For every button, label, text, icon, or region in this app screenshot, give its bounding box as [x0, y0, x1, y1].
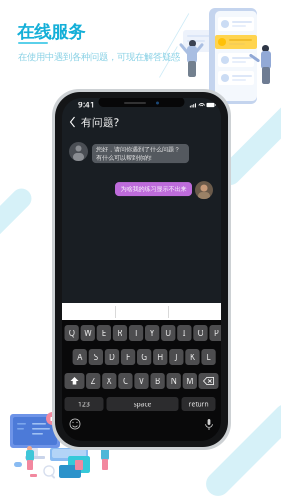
button[interactable]: J: [169, 349, 183, 365]
staticText: X: [107, 376, 112, 386]
button[interactable]: Q: [64, 325, 79, 341]
button[interactable]: A: [73, 349, 87, 365]
staticText: Q: [69, 328, 75, 338]
staticText: V: [139, 376, 144, 386]
button[interactable]: Emoji: [69, 418, 81, 430]
button[interactable]: L: [201, 349, 216, 365]
staticText: P: [214, 328, 219, 338]
button[interactable]: H: [153, 349, 167, 365]
staticText: 在使用中遇到各种问题，可现在解答疑惑: [18, 51, 180, 63]
staticText: K: [190, 352, 195, 362]
staticText: U: [165, 328, 171, 338]
button[interactable]: W: [81, 325, 95, 341]
staticText: 在线服务: [17, 21, 85, 43]
staticText: J: [175, 352, 177, 362]
staticText: R: [117, 328, 122, 338]
button[interactable]: N: [167, 373, 181, 389]
button[interactable]: space: [106, 397, 178, 411]
staticText: O: [197, 328, 203, 338]
button[interactable]: M: [183, 373, 197, 389]
button[interactable]: 123: [64, 397, 103, 411]
button[interactable]: S: [89, 349, 103, 365]
staticText: E: [102, 328, 106, 338]
staticText: I: [183, 328, 186, 338]
button[interactable]: C: [118, 373, 133, 389]
staticText: 9:41: [78, 99, 95, 110]
staticText: A: [77, 352, 82, 362]
button[interactable]: U: [161, 325, 175, 341]
staticText: M: [186, 376, 193, 386]
staticText: F: [126, 352, 130, 362]
staticText: N: [171, 376, 177, 386]
staticText: W: [84, 328, 91, 338]
button[interactable]: Delete: [198, 373, 218, 389]
button[interactable]: Z: [86, 373, 100, 389]
button[interactable]: G: [137, 349, 151, 365]
button[interactable]: Dictation: [204, 417, 214, 430]
button[interactable]: I: [177, 325, 191, 341]
button[interactable]: Y: [145, 325, 159, 341]
staticText: D: [109, 352, 115, 362]
button[interactable]: O: [193, 325, 208, 341]
staticText: Y: [150, 328, 155, 338]
button[interactable]: T: [129, 325, 143, 341]
staticText: T: [134, 328, 138, 338]
staticText: return: [188, 400, 208, 408]
staticText: 您好，请问你遇到了什么问题？有什么可以帮到你的!: [96, 145, 180, 162]
button[interactable]: B: [150, 373, 165, 389]
button[interactable]: K: [185, 349, 200, 365]
staticText: 为啥我的练习显示不出来: [120, 185, 186, 193]
button[interactable]: R: [113, 325, 127, 341]
staticText: Z: [91, 376, 96, 386]
button[interactable]: V: [134, 373, 149, 389]
staticText: S: [94, 352, 98, 362]
button[interactable]: Shift: [64, 373, 84, 389]
button[interactable]: P: [209, 325, 224, 341]
staticText: 123: [78, 400, 90, 408]
button[interactable]: X: [102, 373, 116, 389]
button[interactable]: F: [121, 349, 135, 365]
staticText: G: [141, 352, 147, 362]
staticText: 有问题?: [81, 115, 119, 129]
staticText: C: [123, 376, 128, 386]
button[interactable]: return: [181, 397, 215, 411]
staticText: L: [206, 352, 210, 362]
button[interactable]: Back: [68, 114, 78, 130]
staticText: space: [133, 400, 151, 408]
button[interactable]: E: [97, 325, 111, 341]
staticText: B: [155, 376, 160, 386]
staticText: H: [157, 352, 163, 362]
button[interactable]: D: [105, 349, 119, 365]
